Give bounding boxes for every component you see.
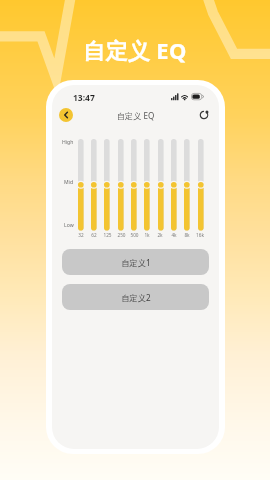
staticText: 自定义2 (121, 292, 151, 303)
staticText: 32 (78, 232, 84, 238)
staticText: 62 (91, 232, 97, 238)
button[interactable]: 自定义2 (62, 284, 209, 310)
button[interactable]: Band 2k (156, 135, 166, 235)
button[interactable]: Band 32 (76, 135, 86, 235)
button[interactable]: Band 4k (169, 135, 179, 235)
staticText: 4k (171, 232, 177, 238)
button[interactable]: Band 500 (129, 135, 139, 235)
button[interactable]: Band 8k (182, 135, 192, 235)
staticText: 125 (103, 232, 112, 238)
staticText: 13:47 (73, 92, 95, 104)
staticText: 250 (117, 232, 126, 238)
staticText: Mid (64, 179, 74, 186)
staticText: 自定义 EQ (117, 110, 155, 121)
button[interactable]: Reset (198, 109, 210, 121)
staticText: 500 (130, 232, 139, 238)
button[interactable]: Band 62 (89, 135, 99, 235)
button[interactable]: Band 1k (142, 135, 152, 235)
staticText: 1k (144, 232, 150, 238)
staticText: 8k (184, 232, 190, 238)
button[interactable]: Back (59, 108, 73, 122)
button[interactable]: Band 16k (196, 135, 206, 235)
staticText: 自定义1 (121, 257, 151, 268)
button[interactable]: 自定义1 (62, 249, 209, 275)
staticText: 2k (157, 232, 163, 238)
staticText: Low (64, 222, 74, 229)
button[interactable]: Band 250 (116, 135, 126, 235)
staticText: 自定义 EQ (83, 35, 187, 65)
staticText: 16k (196, 232, 204, 238)
button[interactable]: Band 125 (102, 135, 112, 235)
staticText: High (62, 139, 74, 146)
